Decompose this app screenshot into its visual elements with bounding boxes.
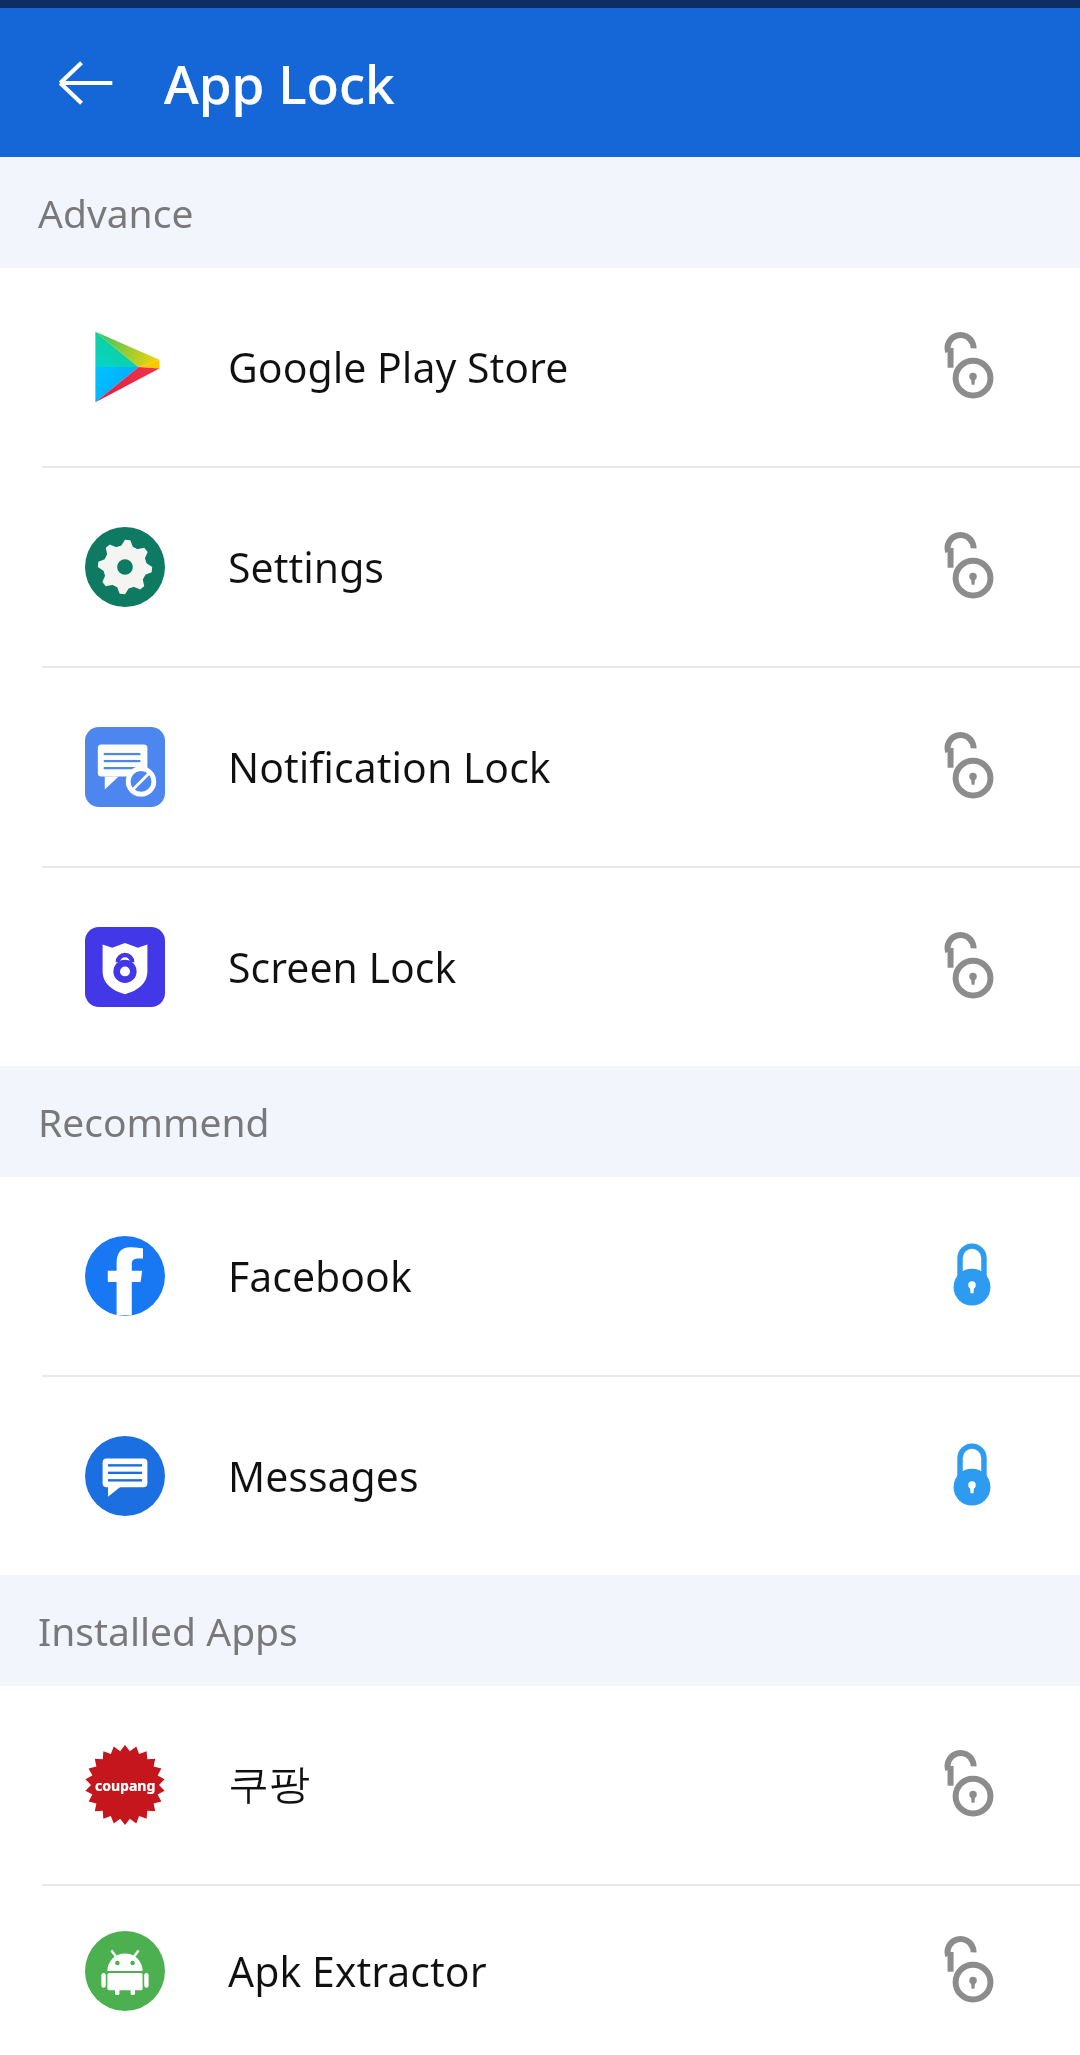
staticText: Screen Lock [228,939,946,995]
button[interactable]: Unlocked Screen Lock [946,931,998,1003]
button[interactable]: Apk Extractor [0,1886,1080,2055]
staticText: Notification Lock [228,739,946,795]
staticText: Messages [228,1448,946,1504]
button[interactable]: Notification Lock [0,668,1080,866]
staticText: Recommend [38,1095,270,1148]
button[interactable]: Unlocked Google Play Store [946,331,998,403]
button[interactable]: Settings [0,468,1080,666]
button[interactable]: Facebook [0,1177,1080,1375]
button[interactable]: Locked Facebook [946,1240,998,1312]
button[interactable]: Messages [0,1377,1080,1575]
button[interactable]: Unlocked Apk Extractor [946,1935,998,2007]
button[interactable]: coupang [0,1686,1080,1884]
staticText: Apk Extractor [228,1943,946,1999]
button[interactable]: Screen Lock [0,868,1080,1066]
button[interactable]: Locked Messages [946,1440,998,1512]
button[interactable]: Back [50,47,122,119]
staticText: Settings [228,539,946,595]
staticText: 쿠팡 [228,1759,946,1811]
staticText: App Lock [164,47,395,119]
button[interactable]: Unlocked Notification Lock [946,731,998,803]
staticText: Google Play Store [228,339,946,395]
staticText: coupang [95,1776,156,1795]
button[interactable]: Google Play Store [0,268,1080,466]
staticText: Facebook [228,1248,946,1304]
staticText: Advance [38,186,194,239]
button[interactable]: Unlocked 쿠팡 [946,1749,998,1821]
staticText: Installed Apps [38,1604,298,1657]
button[interactable]: Unlocked Settings [946,531,998,603]
